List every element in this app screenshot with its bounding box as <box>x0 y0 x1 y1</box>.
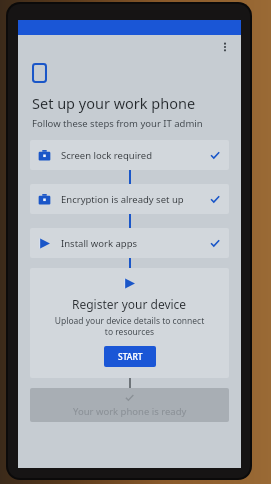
button[interactable]: More options <box>215 37 235 57</box>
staticText: START <box>118 351 143 363</box>
staticText: Register your device <box>72 296 187 312</box>
button[interactable]: Your work phone is ready <box>30 388 229 422</box>
staticText: Your work phone is ready <box>73 405 187 418</box>
staticText: Screen lock required <box>61 149 209 162</box>
staticText: Set up your work phone <box>32 93 196 113</box>
button[interactable]: START <box>104 346 156 367</box>
button[interactable]: Encryption is already set up <box>30 184 229 214</box>
staticText: Encryption is already set up <box>61 193 209 206</box>
button[interactable]: Screen lock required <box>30 140 229 170</box>
staticText: Follow these steps from your IT admin <box>32 117 203 130</box>
staticText: Install work apps <box>61 237 209 250</box>
button[interactable]: Install work apps <box>30 228 229 258</box>
staticText: Upload your device details to connect to… <box>54 315 205 337</box>
